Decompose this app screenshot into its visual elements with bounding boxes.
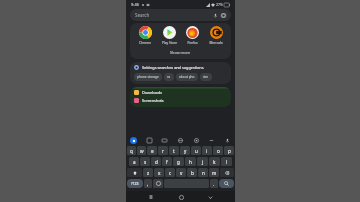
staticText: phone storage — [137, 75, 159, 79]
staticText: 27% — [216, 2, 223, 7]
staticText: sim — [203, 75, 209, 79]
button[interactable]: Screenshots — [134, 98, 227, 103]
button[interactable]: l — [221, 157, 232, 166]
other: Voice search — [213, 13, 218, 18]
button[interactable]: Settings searches and suggestions — [134, 65, 204, 70]
button[interactable]: . — [210, 179, 218, 188]
staticText: ?123 — [131, 181, 139, 186]
staticText: t — [173, 148, 175, 154]
button[interactable]: r — [158, 146, 168, 155]
button[interactable]: s — [140, 157, 150, 166]
staticText: m — [212, 170, 217, 176]
staticText: g — [177, 159, 180, 165]
button[interactable]: ?123 — [127, 179, 143, 188]
button[interactable]: Settings — [193, 137, 200, 144]
button[interactable]: Recents — [146, 192, 156, 202]
button[interactable]: Downloads — [134, 90, 227, 95]
button[interactable]: ra — [164, 73, 174, 81]
button[interactable]: a — [129, 157, 139, 166]
button[interactable]: Search — [130, 9, 231, 21]
button[interactable]: Emoji — [153, 179, 163, 188]
button[interactable]: b — [187, 168, 197, 177]
staticText: j — [202, 159, 204, 165]
button[interactable]: k — [209, 157, 220, 166]
button[interactable]: j — [197, 157, 208, 166]
staticText: z — [147, 170, 150, 176]
staticText: f — [166, 159, 168, 165]
staticText: s — [144, 159, 147, 165]
button[interactable]: g — [173, 157, 184, 166]
button[interactable]: , — [144, 179, 152, 188]
button[interactable]: q — [127, 146, 136, 155]
button[interactable]: Google — [130, 137, 137, 144]
button[interactable]: Play Store — [158, 26, 180, 45]
staticText: w — [140, 148, 144, 154]
staticText: Firefox — [187, 41, 198, 45]
staticText: i — [206, 148, 208, 154]
staticText: Search — [135, 12, 150, 18]
button[interactable]: sim — [200, 73, 212, 81]
staticText: n — [202, 170, 205, 176]
button[interactable]: c — [165, 168, 175, 177]
staticText: p — [228, 148, 231, 154]
staticText: Play Store — [162, 41, 177, 45]
button[interactable]: Chrome — [134, 26, 156, 45]
button[interactable]: p — [224, 146, 234, 155]
staticText: ra — [167, 75, 171, 79]
staticText: Show more — [170, 50, 191, 55]
button[interactable]: n — [198, 168, 208, 177]
staticText: e — [151, 148, 154, 154]
staticText: about pho — [179, 75, 195, 79]
staticText: Chrome — [139, 41, 151, 45]
staticText: x — [158, 170, 161, 176]
staticText: . — [213, 181, 215, 187]
button[interactable]: z — [143, 168, 153, 177]
button[interactable]: h — [185, 157, 196, 166]
staticText: Settings searches and suggestions — [142, 65, 204, 70]
staticText: o — [217, 148, 220, 154]
button[interactable]: i — [202, 146, 212, 155]
staticText: Downloads — [142, 90, 162, 95]
button[interactable]: Search — [219, 179, 234, 188]
button[interactable]: x — [154, 168, 164, 177]
button[interactable]: Shift — [127, 168, 142, 177]
button[interactable]: about pho — [176, 73, 198, 81]
staticText: c — [169, 170, 172, 176]
button[interactable]: Show more — [130, 48, 231, 56]
button[interactable]: Home — [176, 192, 186, 202]
staticText: q — [130, 148, 133, 154]
button[interactable]: t — [169, 146, 179, 155]
button[interactable]: y — [180, 146, 190, 155]
button[interactable]: Translate — [177, 137, 184, 144]
staticText: v — [180, 170, 183, 176]
button[interactable]: f — [162, 157, 172, 166]
staticText: , — [147, 181, 149, 187]
staticText: b — [191, 170, 194, 176]
button[interactable]: Collapse — [208, 137, 215, 144]
staticText: d — [155, 159, 158, 165]
button[interactable]: Backspace — [220, 168, 234, 177]
staticText: k — [213, 159, 216, 165]
other: Google Lens — [221, 13, 226, 18]
button[interactable]: Voice input — [224, 137, 231, 144]
button[interactable]: phone storage — [134, 73, 162, 81]
staticText: Mercado — [209, 41, 223, 45]
button[interactable]: u — [191, 146, 201, 155]
staticText: h — [189, 159, 192, 165]
button[interactable]: w — [137, 146, 146, 155]
staticText: a — [133, 159, 136, 165]
button[interactable]: o — [213, 146, 223, 155]
button[interactable]: d — [151, 157, 161, 166]
button[interactable]: Stickers — [146, 137, 153, 144]
staticText: l — [226, 159, 228, 165]
button[interactable]: Mercado — [205, 26, 227, 45]
button[interactable]: Firefox — [181, 26, 203, 45]
staticText: r — [162, 148, 164, 154]
button[interactable]: Back — [205, 192, 215, 202]
staticText: y — [184, 148, 187, 154]
button[interactable]: e — [147, 146, 157, 155]
button[interactable]: GIF — [161, 137, 168, 144]
button[interactable]: m — [209, 168, 219, 177]
button[interactable]: v — [176, 168, 186, 177]
